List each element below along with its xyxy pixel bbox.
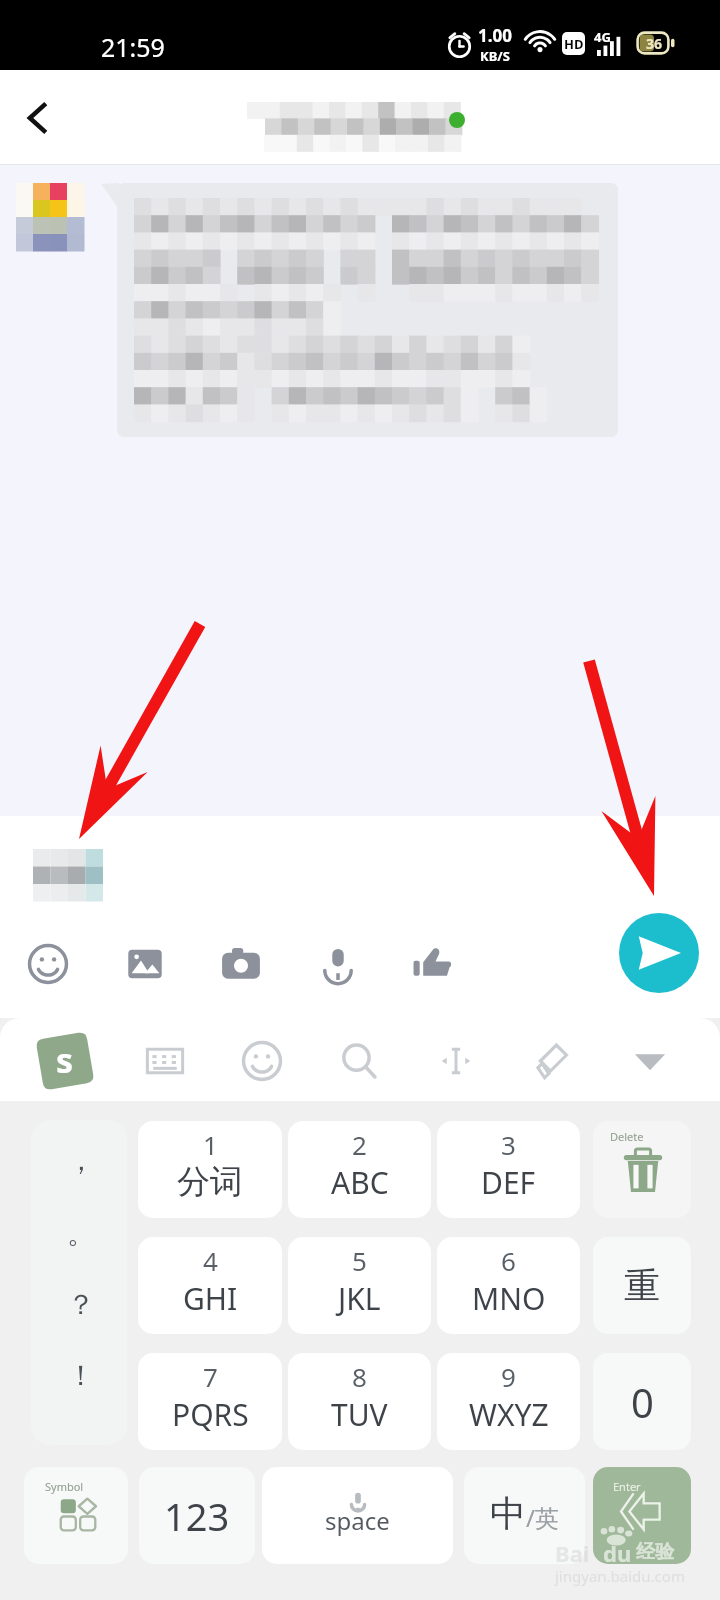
staticText: 4G: [594, 28, 611, 46]
staticText: /英: [526, 1501, 559, 1534]
button[interactable]: Send: [619, 913, 699, 993]
button[interactable]: 9: [437, 1353, 580, 1450]
staticText: 中: [490, 1491, 526, 1536]
button[interactable]: 8: [288, 1353, 431, 1450]
staticText: 36: [646, 34, 663, 53]
button[interactable]: 123: [139, 1467, 255, 1564]
button[interactable]: 5: [288, 1237, 431, 1334]
staticText: DEF: [481, 1162, 536, 1203]
staticText: 4: [203, 1243, 218, 1277]
staticText: 123: [164, 1490, 230, 1542]
staticText: Symbol: [45, 1479, 84, 1494]
button[interactable]: Search: [331, 1033, 387, 1089]
staticText: ABC: [331, 1162, 389, 1203]
staticText: ！: [67, 1358, 95, 1393]
staticText: HD: [564, 35, 584, 53]
button[interactable]: Emoji: [18, 934, 78, 994]
staticText: 2: [352, 1127, 367, 1161]
button[interactable]: 4: [138, 1237, 282, 1334]
staticText: MNO: [472, 1278, 546, 1319]
button[interactable]: 6: [437, 1237, 580, 1334]
button[interactable]: Symbol: [24, 1467, 128, 1564]
staticText: WXYZ: [469, 1394, 549, 1435]
staticText: 重: [624, 1263, 660, 1308]
staticText: 8: [352, 1359, 367, 1393]
button[interactable]: Enter: [593, 1467, 691, 1564]
button[interactable]: Emoji: [234, 1033, 290, 1089]
staticText: 0: [631, 1375, 654, 1429]
button[interactable]: [117, 183, 618, 437]
staticText: Enter: [613, 1479, 641, 1494]
staticText: GHI: [183, 1278, 238, 1319]
button[interactable]: Theme: [525, 1033, 581, 1089]
button[interactable]: Collapse: [622, 1033, 678, 1089]
staticText: 。: [67, 1216, 95, 1251]
button[interactable]: Delete: [593, 1121, 691, 1218]
button[interactable]: ，: [31, 1120, 127, 1445]
staticText: space: [325, 1504, 390, 1537]
staticText: du: [603, 1538, 632, 1568]
staticText: 1: [203, 1127, 218, 1161]
staticText: JKL: [338, 1278, 381, 1319]
button[interactable]: space: [262, 1467, 453, 1564]
staticText: Bai: [555, 1538, 590, 1568]
staticText: 6: [501, 1243, 516, 1277]
staticText: 3: [501, 1127, 516, 1161]
staticText: 21:59: [101, 30, 165, 64]
button[interactable]: 2: [288, 1121, 431, 1218]
staticText: 7: [203, 1359, 218, 1393]
staticText: 分词: [177, 1161, 243, 1203]
button[interactable]: Like: [402, 934, 462, 994]
staticText: ？: [67, 1287, 95, 1322]
staticText: ，: [67, 1143, 95, 1178]
button[interactable]: Gallery: [115, 934, 175, 994]
staticText: Delete: [610, 1129, 644, 1144]
staticText: 5: [352, 1243, 367, 1277]
button[interactable]: 1: [138, 1121, 282, 1218]
button[interactable]: Back: [0, 70, 76, 165]
button[interactable]: Keyboard: [137, 1033, 193, 1089]
staticText: 1.00: [478, 24, 512, 47]
staticText: 9: [501, 1359, 516, 1393]
staticText: KB/S: [480, 47, 510, 65]
button[interactable]: 7: [138, 1353, 282, 1450]
staticText: 经验: [636, 1540, 674, 1564]
button[interactable]: 0: [593, 1353, 691, 1450]
button[interactable]: 3: [437, 1121, 580, 1218]
staticText: PQRS: [172, 1394, 249, 1435]
staticText: TUV: [331, 1394, 388, 1435]
button[interactable]: 重: [593, 1237, 691, 1334]
button[interactable]: 中: [464, 1467, 585, 1564]
staticText: s: [56, 1037, 74, 1083]
button[interactable]: Camera: [211, 934, 271, 994]
button[interactable]: Microphone: [308, 934, 368, 994]
staticText: jingyan.baidu.com: [555, 1566, 685, 1586]
button[interactable]: Cursor: [428, 1033, 484, 1089]
button[interactable]: Sogou: [36, 1032, 94, 1090]
